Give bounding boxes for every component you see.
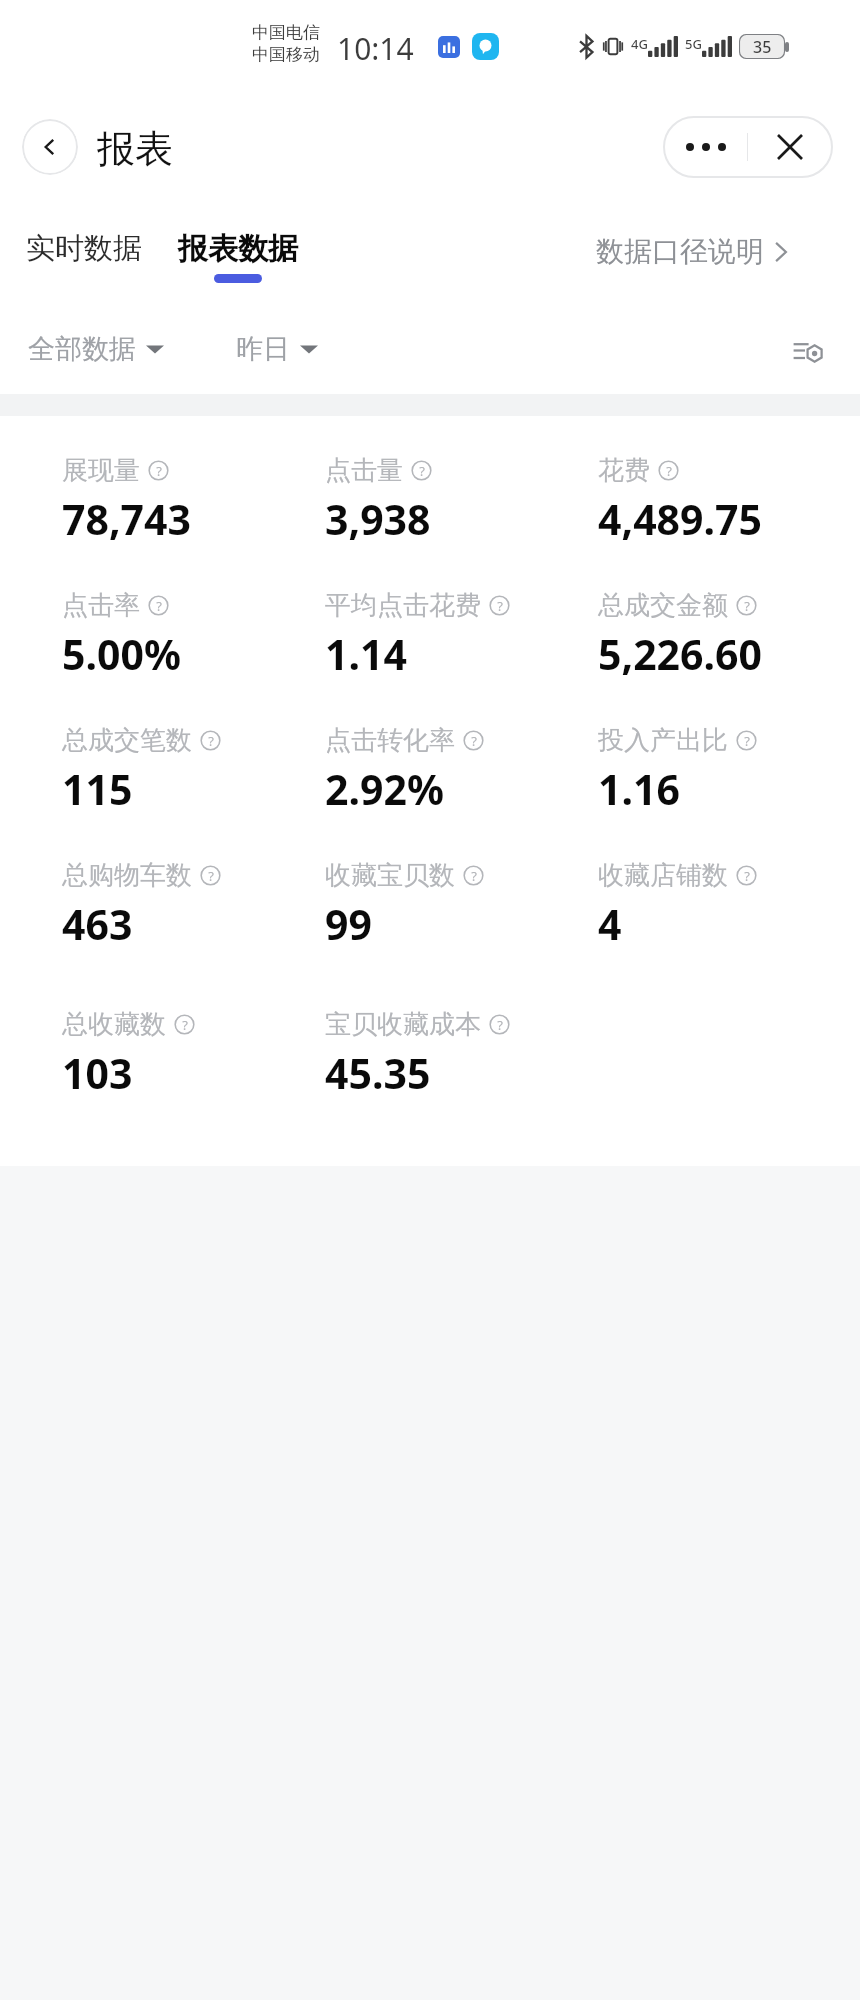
button[interactable]: Help <box>463 865 484 886</box>
staticText: ? <box>666 462 672 480</box>
staticText: 5G <box>685 35 702 53</box>
staticText: ? <box>471 732 477 750</box>
button[interactable]: 实时数据 <box>26 230 142 267</box>
button[interactable]: Help <box>148 595 169 616</box>
staticText: 总成交笔数 <box>62 724 192 757</box>
button[interactable]: Help <box>463 730 484 751</box>
staticText: 点击转化率 <box>325 724 455 757</box>
button[interactable]: More options <box>664 117 747 177</box>
button[interactable]: 收藏宝贝数 <box>325 859 484 952</box>
button[interactable]: 总成交笔数 <box>62 724 221 817</box>
staticText: 35 <box>753 36 772 58</box>
staticText: 3,938 <box>325 491 431 547</box>
staticText: 宝贝收藏成本 <box>325 1008 481 1041</box>
staticText: 平均点击花费 <box>325 589 481 622</box>
staticText: ? <box>156 462 162 480</box>
staticText: 点击量 <box>325 454 403 487</box>
button[interactable]: 花费 <box>598 454 762 547</box>
staticText: ? <box>744 867 750 885</box>
staticText: 中国移动 <box>252 44 320 65</box>
staticText: 总购物车数 <box>62 859 192 892</box>
staticText: 收藏宝贝数 <box>325 859 455 892</box>
button[interactable]: 投入产出比 <box>598 724 757 817</box>
staticText: ? <box>744 597 750 615</box>
staticText: 投入产出比 <box>598 724 728 757</box>
button[interactable]: 点击率 <box>62 589 181 682</box>
button[interactable]: Help <box>200 730 221 751</box>
staticText: 4,489.75 <box>598 491 762 547</box>
button[interactable]: 总收藏数 <box>62 1008 195 1101</box>
button[interactable]: Help <box>736 595 757 616</box>
staticText: 2.92% <box>325 761 444 817</box>
button[interactable]: Help <box>489 1014 510 1035</box>
staticText: 463 <box>62 896 133 952</box>
staticText: 实时数据 <box>26 230 142 267</box>
staticText: ? <box>744 732 750 750</box>
staticText: ? <box>156 597 162 615</box>
button[interactable]: 昨日 <box>236 332 318 366</box>
staticText: ? <box>471 867 477 885</box>
button[interactable]: Customize metrics <box>782 326 834 378</box>
staticText: 78,743 <box>62 491 191 547</box>
staticText: 点击率 <box>62 589 140 622</box>
staticText: 1.14 <box>325 626 407 682</box>
button[interactable]: 收藏店铺数 <box>598 859 757 952</box>
staticText: 1.16 <box>598 761 680 817</box>
staticText: ? <box>182 1016 188 1034</box>
staticText: 5.00% <box>62 626 181 682</box>
staticText: 报表数据 <box>178 230 298 268</box>
button[interactable]: 数据口径说明 <box>596 234 788 269</box>
button[interactable]: 展现量 <box>62 454 191 547</box>
button[interactable]: 宝贝收藏成本 <box>325 1008 510 1101</box>
staticText: 总成交金额 <box>598 589 728 622</box>
button[interactable]: 总成交金额 <box>598 589 762 682</box>
button[interactable]: Help <box>148 460 169 481</box>
staticText: ? <box>208 867 214 885</box>
button[interactable]: 总购物车数 <box>62 859 221 952</box>
staticText: 中国电信 <box>252 22 320 43</box>
staticText: ? <box>497 597 503 615</box>
staticText: 45.35 <box>325 1045 431 1101</box>
button[interactable]: 点击量 <box>325 454 432 547</box>
button[interactable]: Help <box>736 865 757 886</box>
staticText: 花费 <box>598 454 650 487</box>
button[interactable]: Close <box>748 117 832 177</box>
staticText: 总收藏数 <box>62 1008 166 1041</box>
staticText: 报表 <box>97 125 173 173</box>
staticText: 115 <box>62 761 133 817</box>
button[interactable]: Help <box>200 865 221 886</box>
staticText: 收藏店铺数 <box>598 859 728 892</box>
staticText: 103 <box>62 1045 133 1101</box>
staticText: 5,226.60 <box>598 626 762 682</box>
staticText: ? <box>419 462 425 480</box>
button[interactable]: Back <box>22 119 78 175</box>
staticText: 4 <box>598 896 622 952</box>
staticText: ? <box>497 1016 503 1034</box>
staticText: 4G <box>631 35 648 53</box>
staticText: 昨日 <box>236 332 290 366</box>
staticText: 展现量 <box>62 454 140 487</box>
button[interactable]: 报表数据 <box>178 230 298 283</box>
staticText: 全部数据 <box>28 332 136 366</box>
button[interactable]: Help <box>736 730 757 751</box>
staticText: 99 <box>325 896 372 952</box>
button[interactable]: Help <box>174 1014 195 1035</box>
staticText: ? <box>208 732 214 750</box>
button[interactable]: 全部数据 <box>28 332 164 366</box>
button[interactable]: Help <box>489 595 510 616</box>
button[interactable]: 点击转化率 <box>325 724 484 817</box>
button[interactable]: 平均点击花费 <box>325 589 510 682</box>
button[interactable]: Help <box>411 460 432 481</box>
button[interactable]: Help <box>658 460 679 481</box>
staticText: 数据口径说明 <box>596 234 764 269</box>
staticText: 10:14 <box>337 28 414 69</box>
